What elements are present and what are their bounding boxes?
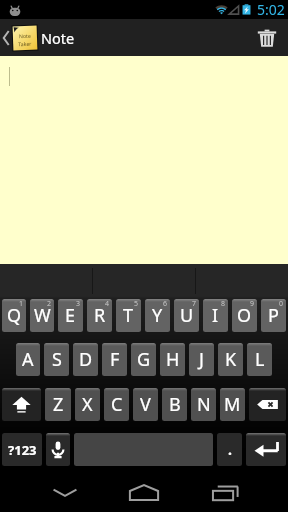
staticText: Note	[41, 28, 75, 48]
button[interactable]: E	[58, 299, 83, 332]
staticText: Note	[19, 32, 31, 39]
button[interactable]: F	[102, 343, 127, 376]
staticText: J	[199, 347, 204, 372]
staticText: 9	[250, 299, 255, 309]
staticText: K	[225, 347, 237, 372]
staticText: G	[137, 347, 151, 372]
staticText: Taker	[18, 40, 32, 47]
staticText: R	[94, 303, 106, 328]
staticText: Q	[7, 303, 22, 328]
staticText: ?123	[8, 441, 37, 459]
button[interactable]: V	[133, 388, 158, 421]
button[interactable]: C	[104, 388, 129, 421]
button[interactable]: Recent apps	[189, 466, 261, 512]
button[interactable]: B	[162, 388, 187, 421]
staticText: 5	[134, 299, 139, 309]
button[interactable]: Up	[0, 19, 38, 56]
staticText: .	[228, 440, 232, 459]
button[interactable]: M	[220, 388, 245, 421]
staticText: U	[180, 303, 194, 328]
button[interactable]: .	[217, 433, 242, 466]
staticText: 5:02	[257, 0, 285, 19]
staticText: 8	[221, 299, 226, 309]
button[interactable]: X	[75, 388, 100, 421]
staticText: 2	[47, 299, 52, 309]
staticText: 6	[163, 299, 168, 309]
button[interactable]: W	[30, 299, 54, 332]
button[interactable]: H	[160, 343, 185, 376]
button[interactable]: D	[73, 343, 98, 376]
staticText: V	[140, 392, 151, 417]
staticText: E	[65, 303, 76, 328]
staticText: Y	[152, 303, 163, 328]
button[interactable]: N	[191, 388, 216, 421]
button[interactable]: Enter	[246, 433, 286, 466]
button[interactable]: T	[116, 299, 141, 332]
button[interactable]: Delete	[246, 19, 288, 56]
staticText: 0	[279, 299, 284, 309]
staticText: M	[224, 392, 241, 417]
button[interactable]: R	[87, 299, 112, 332]
staticText: 3	[76, 299, 81, 309]
staticText: S	[52, 347, 62, 372]
staticText: L	[255, 347, 265, 372]
button[interactable]: G	[131, 343, 156, 376]
staticText: 4	[105, 299, 110, 309]
staticText: O	[237, 303, 252, 328]
staticText: C	[111, 392, 123, 417]
button[interactable]: Backspace	[249, 388, 286, 421]
button[interactable]: Z	[45, 388, 71, 421]
button[interactable]: Shift	[2, 388, 41, 421]
staticText: H	[166, 347, 180, 372]
button[interactable]: P	[261, 299, 286, 332]
staticText: I	[212, 303, 219, 328]
staticText: 7	[192, 299, 197, 309]
staticText: T	[123, 303, 134, 328]
button[interactable]: Back	[29, 466, 101, 512]
staticText: B	[169, 392, 181, 417]
staticText: F	[110, 347, 120, 372]
button[interactable]: J	[189, 343, 214, 376]
button[interactable]: Home	[108, 466, 180, 512]
staticText: X	[82, 392, 93, 417]
staticText: N	[197, 392, 211, 417]
staticText: 1	[19, 299, 24, 309]
button[interactable]: L	[247, 343, 272, 376]
staticText: A	[22, 347, 34, 372]
button[interactable]: Voice input	[46, 433, 70, 466]
button[interactable]: U	[174, 299, 199, 332]
button[interactable]: O	[232, 299, 257, 332]
staticText: P	[268, 303, 279, 328]
button[interactable]: A	[16, 343, 40, 376]
button[interactable]: I	[203, 299, 228, 332]
button[interactable]: ?123	[2, 433, 42, 466]
staticText: W	[34, 303, 51, 328]
staticText: Z	[53, 392, 64, 417]
button[interactable]: Q	[2, 299, 26, 332]
button[interactable]: S	[44, 343, 69, 376]
staticText: D	[79, 347, 93, 372]
button[interactable]: K	[218, 343, 243, 376]
button[interactable]: Y	[145, 299, 170, 332]
